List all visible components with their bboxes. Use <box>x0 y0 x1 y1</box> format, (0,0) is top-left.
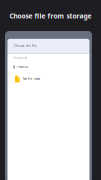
staticText: Previous <box>17 65 28 69</box>
staticText: Download <box>13 56 27 60</box>
staticText: Text file name <box>23 77 41 81</box>
button[interactable]: Previous <box>13 63 87 70</box>
staticText: Choose file from storage <box>9 12 91 20</box>
button[interactable]: Text file name <box>15 74 89 83</box>
staticText: Choose the file <box>14 44 37 48</box>
button[interactable]: Choose the file <box>14 41 74 50</box>
